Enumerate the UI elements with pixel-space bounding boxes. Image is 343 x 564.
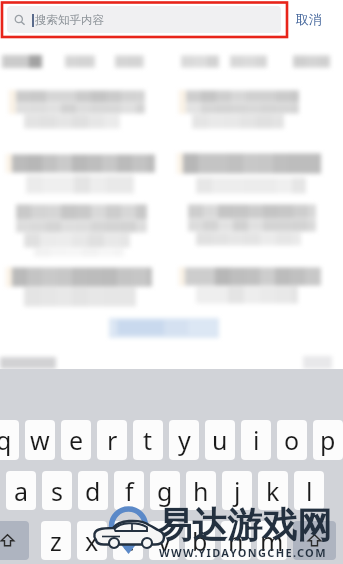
- button[interactable]: g: [150, 471, 180, 510]
- staticText: e: [69, 423, 84, 457]
- button[interactable]: c: [113, 521, 143, 560]
- button[interactable]: t: [133, 420, 163, 460]
- staticText: 易达游戏网: [157, 503, 332, 547]
- button[interactable]: j: [222, 471, 252, 510]
- staticText: l: [306, 474, 313, 508]
- staticText: b: [192, 524, 208, 558]
- staticText: r: [107, 423, 118, 457]
- staticText: p: [320, 423, 336, 457]
- staticText: c: [122, 524, 135, 558]
- button[interactable]: z: [41, 521, 71, 560]
- button[interactable]: l: [294, 471, 324, 510]
- button[interactable]: 取消: [281, 0, 337, 38]
- staticText: o: [284, 423, 300, 457]
- staticText: s: [51, 474, 63, 508]
- staticText: x: [85, 524, 99, 558]
- button[interactable]: k: [258, 471, 288, 510]
- staticText: a: [14, 474, 29, 508]
- staticText: n: [228, 524, 244, 558]
- button[interactable]: Shift: [0, 521, 29, 560]
- button[interactable]: u: [205, 420, 235, 460]
- staticText: d: [85, 474, 101, 508]
- button[interactable]: 搜索知乎内容: [7, 6, 281, 33]
- button[interactable]: b: [185, 521, 215, 560]
- staticText: y: [178, 423, 191, 457]
- button[interactable]: m: [257, 521, 287, 560]
- staticText: u: [212, 423, 228, 457]
- button[interactable]: y: [169, 420, 199, 460]
- staticText: h: [193, 474, 209, 508]
- staticText: i: [253, 423, 260, 457]
- staticText: v: [158, 524, 171, 558]
- staticText: t: [143, 423, 153, 457]
- button[interactable]: o: [277, 420, 307, 460]
- button[interactable]: q: [0, 420, 19, 460]
- button[interactable]: i: [241, 420, 271, 460]
- button[interactable]: d: [78, 471, 108, 510]
- button[interactable]: r: [97, 420, 127, 460]
- staticText: g: [157, 474, 173, 508]
- staticText: WWW.YIDAYONGCHE.COM: [159, 545, 327, 560]
- staticText: m: [260, 524, 284, 558]
- button[interactable]: a: [6, 471, 36, 510]
- button[interactable]: h: [186, 471, 216, 510]
- staticText: k: [266, 474, 280, 508]
- staticText: j: [234, 474, 241, 508]
- staticText: 搜索知乎内容: [35, 13, 104, 27]
- staticText: q: [0, 423, 12, 457]
- staticText: f: [125, 474, 134, 508]
- staticText: 取消: [296, 11, 322, 27]
- button[interactable]: f: [114, 471, 144, 510]
- button[interactable]: v: [149, 521, 179, 560]
- staticText: w: [30, 423, 50, 457]
- button[interactable]: x: [77, 521, 107, 560]
- button[interactable]: w: [25, 420, 55, 460]
- button[interactable]: Delete: [293, 521, 336, 560]
- button[interactable]: n: [221, 521, 251, 560]
- button[interactable]: e: [61, 420, 91, 460]
- staticText: z: [50, 524, 62, 558]
- button[interactable]: s: [42, 471, 72, 510]
- button[interactable]: p: [313, 420, 343, 460]
